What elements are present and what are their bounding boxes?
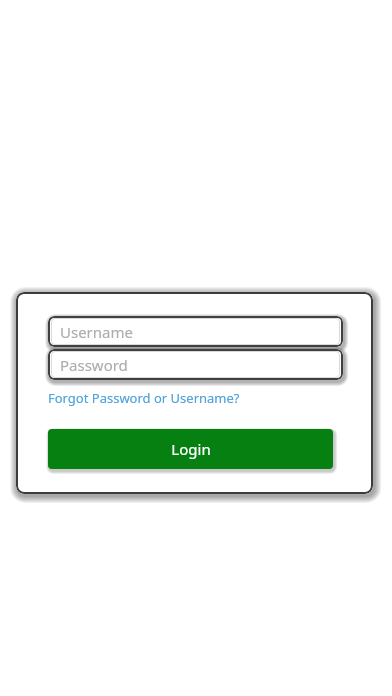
staticText: Username bbox=[60, 322, 133, 342]
button[interactable]: Forgot Password or Username? bbox=[48, 389, 240, 407]
button[interactable]: Username bbox=[48, 316, 343, 347]
button[interactable]: Password bbox=[48, 349, 343, 380]
button[interactable]: Login bbox=[48, 429, 333, 469]
staticText: Password bbox=[60, 355, 128, 375]
staticText: Login bbox=[171, 439, 211, 459]
staticText: Forgot Password or Username? bbox=[48, 389, 240, 407]
